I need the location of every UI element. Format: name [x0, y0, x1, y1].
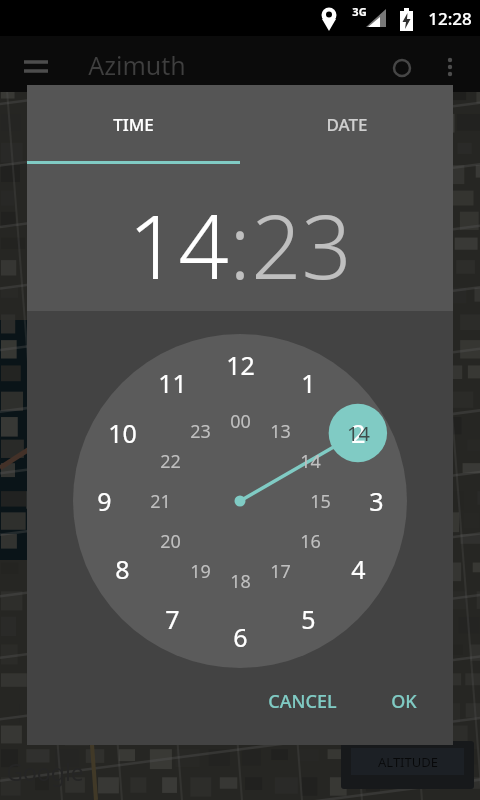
- staticText: DATE: [326, 113, 368, 136]
- staticText: 2: [351, 416, 366, 450]
- button[interactable]: 23: [251, 185, 352, 305]
- staticText: 12:28: [428, 7, 472, 30]
- staticText: 10: [108, 416, 137, 450]
- staticText: 7: [165, 602, 180, 636]
- staticText: 3: [369, 484, 384, 518]
- button[interactable]: OK: [377, 677, 431, 726]
- staticText: 19: [190, 559, 211, 584]
- staticText: 5: [301, 602, 316, 636]
- staticText: 16: [300, 529, 321, 554]
- staticText: 14: [347, 420, 370, 447]
- staticText: 23: [190, 419, 211, 444]
- staticText: 6: [233, 620, 248, 654]
- button[interactable]: Search: [378, 44, 426, 92]
- staticText: 20: [160, 529, 181, 554]
- staticText: 22: [160, 449, 181, 474]
- staticText: 23: [251, 185, 352, 305]
- staticText: 17: [270, 559, 291, 584]
- staticText: 11: [158, 366, 187, 400]
- button[interactable]: More options: [426, 43, 474, 91]
- staticText: CANCEL: [268, 689, 337, 714]
- staticText: 15: [310, 489, 331, 514]
- staticText: ALTITUDE: [378, 753, 438, 771]
- staticText: TIME: [113, 113, 154, 136]
- staticText: Google: [6, 756, 84, 787]
- staticText: 3G: [352, 4, 367, 19]
- button[interactable]: Menu: [12, 40, 60, 88]
- staticText: 21: [150, 489, 171, 514]
- button[interactable]: CANCEL: [254, 677, 351, 726]
- staticText: OK: [391, 689, 417, 714]
- button[interactable]: TIME: [27, 85, 240, 163]
- staticText: 9: [97, 484, 112, 518]
- staticText: 1: [301, 366, 316, 400]
- staticText: Azimuth: [88, 48, 186, 82]
- staticText: 18: [230, 569, 251, 594]
- staticText: 14: [300, 449, 321, 474]
- staticText: 12: [226, 348, 255, 382]
- staticText: 4: [351, 552, 366, 586]
- staticText: 8: [115, 552, 130, 586]
- staticText: :: [229, 185, 251, 305]
- staticText: 13: [270, 419, 291, 444]
- staticText: 14: [128, 185, 229, 305]
- staticText: 00: [230, 409, 251, 434]
- button[interactable]: ALTITUDE: [341, 741, 474, 789]
- button[interactable]: 1: [73, 334, 407, 668]
- button[interactable]: 14: [128, 185, 229, 305]
- button[interactable]: DATE: [240, 85, 453, 163]
